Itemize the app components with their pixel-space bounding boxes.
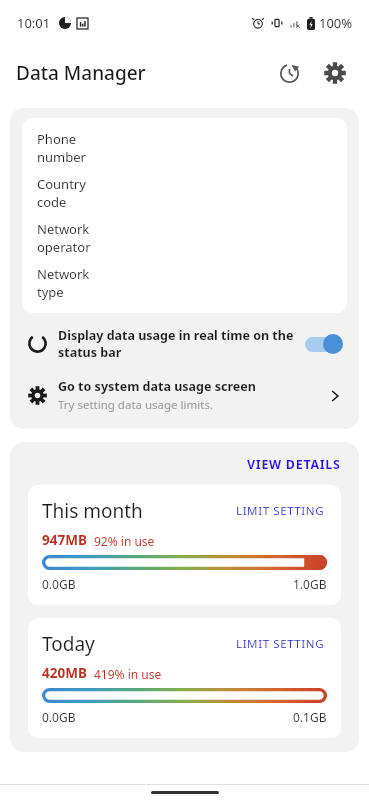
staticText: code <box>37 193 67 211</box>
staticText: Network <box>37 265 90 283</box>
staticText: type <box>37 283 64 301</box>
staticText: 420MB <box>42 664 87 682</box>
staticText: VIEW DETAILS <box>247 456 341 473</box>
button[interactable]: This month <box>28 485 341 605</box>
staticText: 0.0GB <box>42 709 76 725</box>
staticText: 0.1GB <box>293 709 327 725</box>
button[interactable]: Toggle real time data usage <box>303 332 343 356</box>
staticText: Country <box>37 175 86 193</box>
staticText: This month <box>42 498 234 524</box>
staticText: 100% <box>319 14 353 32</box>
button[interactable]: Go to system data usage screen <box>10 370 359 429</box>
staticText: operator <box>37 238 91 256</box>
staticText: 419% in use <box>94 666 162 682</box>
staticText: LIMIT SETTING <box>236 503 325 519</box>
staticText: Display data usage in real time on the s… <box>58 327 295 360</box>
button[interactable]: Settings <box>315 53 355 93</box>
staticText: Go to system data usage screen <box>58 378 256 395</box>
button[interactable]: LIMIT SETTING <box>234 501 327 521</box>
staticText: 947MB <box>42 531 87 549</box>
staticText: number <box>37 148 86 166</box>
staticText: 0.0GB <box>42 576 76 592</box>
staticText: Network <box>37 220 90 238</box>
staticText: LIMIT SETTING <box>236 636 325 652</box>
button[interactable]: LIMIT SETTING <box>234 634 327 654</box>
staticText: Phone <box>37 130 77 148</box>
staticText: Today <box>42 631 234 657</box>
staticText: 92% in use <box>94 533 155 549</box>
button[interactable]: Display data usage in real time on the s… <box>10 313 359 370</box>
staticText: Data Manager <box>16 60 146 86</box>
button[interactable]: Reset usage history <box>269 53 309 93</box>
button[interactable]: VIEW DETAILS <box>245 454 343 475</box>
button[interactable]: Today <box>28 618 341 738</box>
staticText: 1.0GB <box>293 576 327 592</box>
staticText: 10:01 <box>17 14 51 32</box>
staticText: Try setting data usage limits. <box>58 397 213 413</box>
